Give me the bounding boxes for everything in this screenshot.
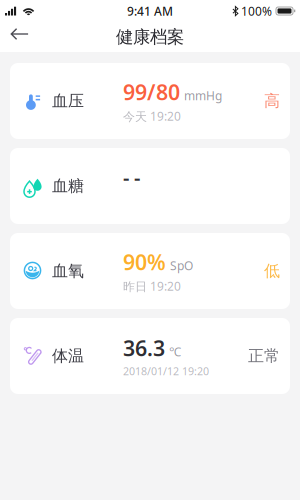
staticText: - - (123, 164, 140, 190)
staticText: 9:41 AM (127, 3, 173, 19)
staticText: 99/80 (123, 78, 180, 106)
staticText: 今天 19:20 (123, 108, 181, 124)
button[interactable]: 血糖 (10, 148, 290, 224)
staticText: 体温 (52, 346, 84, 366)
staticText: 正常 (248, 346, 280, 366)
staticText: 低 (264, 261, 280, 281)
staticText: 昨日 19:20 (123, 278, 181, 294)
staticText: ℃ (169, 344, 181, 359)
staticText: 100% (241, 3, 272, 19)
staticText: mmHg (184, 88, 222, 104)
staticText: 血氧 (52, 261, 84, 281)
button[interactable]: 体温 (10, 318, 290, 394)
staticText: 2018/01/12 19:20 (123, 364, 209, 378)
staticText: 血压 (52, 91, 84, 111)
button[interactable]: 血氧 (10, 233, 290, 309)
button[interactable]: Back (0, 22, 39, 52)
staticText: SpO (170, 258, 193, 274)
staticText: 90% (123, 248, 166, 276)
staticText: 36.3 (123, 334, 165, 362)
staticText: 血糖 (52, 176, 84, 196)
staticText: 高 (264, 91, 280, 111)
staticText: 健康档案 (116, 26, 184, 48)
button[interactable]: 血压 (10, 63, 290, 139)
